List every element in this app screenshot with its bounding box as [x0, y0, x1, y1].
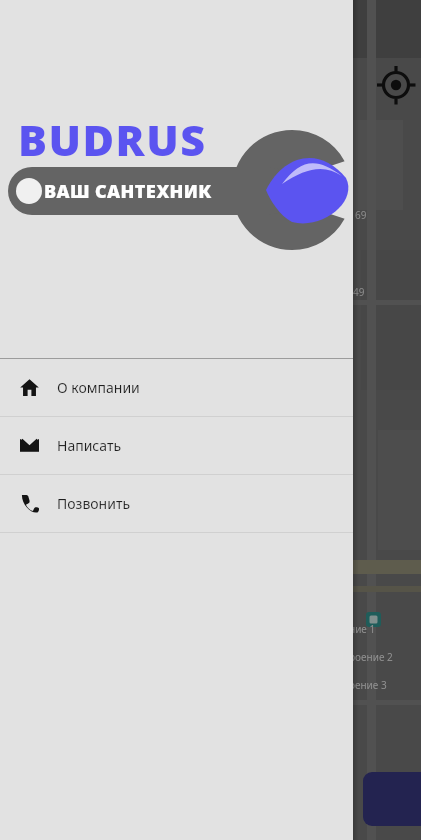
button[interactable]: О компании [0, 359, 353, 416]
staticText: ВАШ САНТЕХНИК [44, 179, 212, 204]
staticText: 49 [353, 285, 365, 299]
button[interactable]: Написать [0, 417, 353, 474]
staticText: Написать [57, 436, 122, 455]
staticText: О компании [57, 378, 140, 397]
staticText: ние 1 [349, 622, 376, 636]
button[interactable]: My location [375, 67, 413, 105]
staticText: оение 3 [349, 678, 387, 692]
button[interactable]: Позвонить [0, 475, 353, 532]
staticText: Позвонить [57, 494, 131, 513]
staticText: BUDRUS [18, 110, 207, 169]
button[interactable]: Action [360, 772, 421, 826]
staticText: роение 2 [349, 650, 393, 664]
staticText: 69 [355, 208, 367, 222]
